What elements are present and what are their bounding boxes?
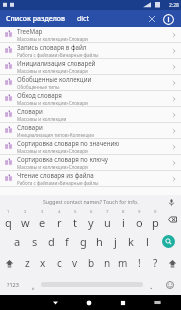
staticText: q: [5, 215, 12, 230]
staticText: Чтение словаря из файла: [17, 171, 94, 179]
button[interactable]: d: [43, 230, 59, 252]
staticText: h: [96, 234, 103, 249]
button[interactable]: l: [139, 230, 155, 252]
staticText: 3: [41, 209, 44, 215]
button[interactable]: z: [19, 252, 35, 274]
staticText: Массивы и коллекции»Словари: [17, 68, 88, 74]
button[interactable]: f: [59, 230, 75, 252]
staticText: !: [138, 256, 141, 270]
staticText: 5: [74, 209, 77, 215]
staticText: Обход словаря: [17, 91, 62, 99]
button[interactable]: m: [115, 252, 131, 274]
button[interactable]: a: [9, 230, 26, 252]
staticText: 8: [122, 209, 125, 215]
staticText: 2:28: [169, 2, 179, 9]
button[interactable]: ?123: [0, 274, 25, 295]
staticText: e: [39, 215, 46, 230]
button[interactable]: Обход словаря: [0, 91, 181, 107]
staticText: Словари: [17, 107, 43, 115]
button[interactable]: Shift: [0, 252, 19, 274]
button[interactable]: Shift: [163, 252, 181, 274]
staticText: Массивы и коллекции: [17, 116, 67, 122]
staticText: t: [73, 215, 77, 230]
button[interactable]: Словари: [0, 123, 181, 139]
button[interactable]: Сортировка словаря по значению: [0, 139, 181, 155]
button[interactable]: Voice input: [166, 197, 176, 207]
button[interactable]: x: [35, 252, 51, 274]
staticText: k: [128, 234, 134, 249]
button[interactable]: h: [91, 230, 107, 252]
staticText: Массивы и коллекции»Словари: [17, 164, 88, 170]
staticText: Инициализация типов»Коллекции: [17, 132, 95, 138]
staticText: z: [25, 256, 30, 270]
button[interactable]: b: [83, 252, 99, 274]
button[interactable]: Space: [41, 280, 143, 289]
staticText: l: [146, 234, 149, 249]
button[interactable]: Home: [72, 295, 106, 310]
button[interactable]: Search: [155, 230, 181, 252]
staticText: Сортировка словаря по ключу: [17, 155, 108, 163]
button[interactable]: 2: [17, 208, 34, 230]
button[interactable]: 3: [34, 208, 51, 230]
button[interactable]: Запись словаря в файл: [0, 43, 181, 59]
staticText: u: [104, 215, 111, 230]
staticText: Массивы и коллекции»Словари: [17, 148, 88, 154]
staticText: s: [32, 234, 38, 249]
staticText: v: [72, 256, 78, 270]
button[interactable]: 7: [99, 208, 115, 230]
staticText: Работа с файлами»Бинарные файлы: [17, 180, 99, 186]
button[interactable]: ?: [147, 252, 163, 274]
button[interactable]: Инициализация словарей: [0, 59, 181, 75]
button[interactable]: Emoji: [159, 274, 181, 295]
staticText: dict: [77, 14, 145, 24]
staticText: Обобщенные коллекции: [17, 75, 92, 83]
button[interactable]: Clear search: [145, 12, 159, 26]
button[interactable]: 1: [0, 208, 17, 230]
button[interactable]: ,: [25, 274, 41, 295]
staticText: y: [88, 215, 94, 230]
staticText: f: [65, 234, 69, 249]
button[interactable]: 5: [67, 208, 83, 230]
button[interactable]: Backspace: [163, 208, 181, 230]
staticText: m: [118, 256, 128, 270]
staticText: Сортировка словаря по значению: [17, 139, 120, 147]
staticText: Suggest contact names? Touch for info.: [43, 198, 139, 205]
button[interactable]: 8: [115, 208, 131, 230]
staticText: Словари: [17, 123, 43, 131]
staticText: ,: [32, 279, 35, 291]
button[interactable]: Сортировка словаря по ключу: [0, 155, 181, 171]
staticText: Работа с файлами»Бинарные файлы: [17, 52, 99, 58]
button[interactable]: 9: [131, 208, 147, 230]
button[interactable]: Словари: [0, 107, 181, 123]
button[interactable]: Recents: [106, 295, 140, 310]
button[interactable]: c: [51, 252, 67, 274]
button[interactable]: Back: [39, 295, 72, 310]
button[interactable]: k: [123, 230, 139, 252]
button[interactable]: s: [26, 230, 43, 252]
button[interactable]: v: [67, 252, 83, 274]
staticText: c: [57, 256, 62, 270]
button[interactable]: n: [99, 252, 115, 274]
button[interactable]: 6: [83, 208, 99, 230]
staticText: Массивы и коллекции»Словари: [17, 36, 88, 42]
button[interactable]: TreeMap: [0, 27, 181, 43]
staticText: Список разделов: [6, 14, 66, 24]
button[interactable]: Switch keyboard: [140, 295, 174, 310]
button[interactable]: Help: [161, 12, 175, 26]
staticText: Инициализация словарей: [17, 59, 96, 67]
button[interactable]: .: [143, 274, 159, 295]
staticText: a: [14, 234, 21, 249]
button[interactable]: 4: [51, 208, 67, 230]
staticText: r: [57, 215, 62, 230]
button[interactable]: Обобщенные коллекции: [0, 75, 181, 91]
staticText: d: [48, 234, 55, 249]
staticText: n: [104, 256, 111, 270]
staticText: b: [88, 256, 95, 270]
button[interactable]: 0: [147, 208, 163, 230]
staticText: 2: [24, 209, 27, 215]
button[interactable]: !: [131, 252, 147, 274]
button[interactable]: Чтение словаря из файла: [0, 171, 181, 187]
button[interactable]: g: [75, 230, 91, 252]
staticText: o: [136, 215, 143, 230]
button[interactable]: j: [107, 230, 123, 252]
